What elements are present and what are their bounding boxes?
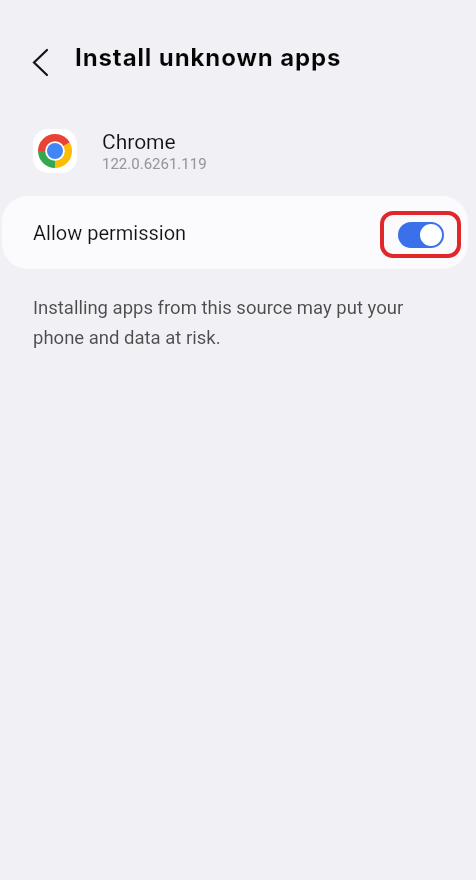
- staticText: Chrome: [102, 130, 176, 155]
- button[interactable]: [398, 222, 444, 248]
- staticText: Install unknown apps: [75, 43, 342, 72]
- staticText: Allow permission: [33, 221, 187, 244]
- staticText: 122.0.6261.119: [102, 155, 207, 173]
- button[interactable]: Allow permission: [2, 196, 468, 269]
- staticText: Installing apps from this source may put…: [33, 297, 404, 348]
- button[interactable]: [20, 44, 60, 84]
- button[interactable]: Chrome: [33, 129, 207, 173]
